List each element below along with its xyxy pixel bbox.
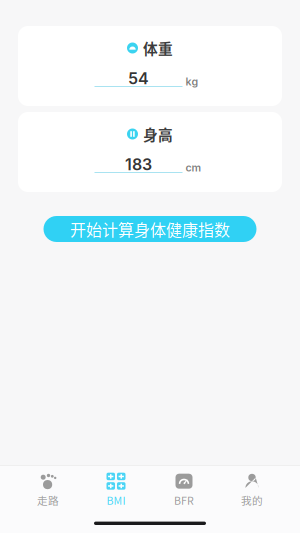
staticText: 54	[128, 69, 149, 88]
button[interactable]: BFR	[150, 471, 218, 507]
button[interactable]: 开始计算身体健康指数	[43, 216, 256, 242]
button[interactable]: 我的	[218, 471, 286, 507]
button[interactable]: BMI	[82, 471, 150, 507]
staticText: 身高	[143, 123, 173, 145]
staticText: kg	[185, 75, 198, 88]
staticText: 开始计算身体健康指数	[70, 217, 230, 241]
staticText: 走路	[37, 492, 59, 508]
button[interactable]: 走路	[14, 471, 82, 507]
staticText: 体重	[143, 37, 173, 59]
staticText: BFR	[174, 492, 194, 508]
staticText: BMI	[106, 492, 125, 508]
staticText: cm	[185, 161, 201, 174]
staticText: 我的	[241, 492, 263, 508]
staticText: 183	[125, 155, 152, 174]
